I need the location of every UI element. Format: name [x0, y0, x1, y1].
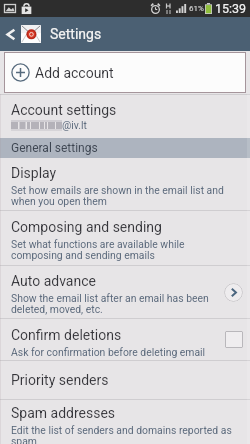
staticText: Set how emails are shown in the email li… — [11, 184, 224, 207]
staticText: @iv.lt — [62, 119, 88, 131]
button[interactable]: Confirm deletions — [222, 329, 246, 351]
staticText: Priority senders — [11, 372, 109, 388]
button[interactable]: Spam addresses — [0, 400, 250, 444]
button[interactable]: Auto advance — [0, 266, 250, 318]
staticText: Auto advance — [11, 273, 96, 289]
staticText: Account settings — [11, 102, 117, 118]
staticText: Settings — [50, 26, 102, 42]
staticText: Edit the list of senders and domains rep… — [11, 424, 232, 444]
staticText: Show the email list after an email has b… — [11, 292, 209, 315]
staticText: Set what functions are available while c… — [11, 238, 185, 261]
staticText: Confirm deletions — [11, 327, 122, 343]
staticText: Spam addresses — [11, 405, 116, 421]
staticText: Ask for confirmation before deleting ema… — [11, 346, 206, 358]
staticText: Composing and sending — [11, 219, 162, 235]
staticText: Display — [11, 165, 57, 181]
button[interactable]: Priority senders — [0, 361, 250, 399]
button[interactable]: Composing and sending — [0, 211, 250, 265]
button[interactable]: Add account — [4, 52, 246, 93]
button[interactable]: Confirm deletions — [0, 319, 250, 360]
button[interactable]: Display — [0, 158, 250, 210]
staticText: 15:39 — [215, 1, 247, 16]
staticText: 61% — [189, 4, 204, 13]
staticText: Add account — [35, 65, 114, 81]
button[interactable]: Navigate up — [0, 17, 21, 51]
button[interactable]: Account settings — [0, 95, 250, 138]
button[interactable]: Open auto advance options — [224, 283, 243, 302]
staticText: General settings — [11, 141, 98, 155]
